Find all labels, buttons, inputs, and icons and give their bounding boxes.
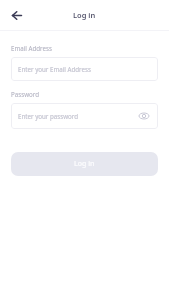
button[interactable]: Enter your password bbox=[11, 103, 158, 129]
staticText: Enter your Email Address bbox=[18, 65, 91, 73]
button[interactable]: Back bbox=[6, 5, 26, 25]
staticText: Log in bbox=[73, 10, 96, 20]
staticText: Email Address bbox=[11, 44, 52, 52]
button[interactable]: Log in bbox=[11, 152, 158, 176]
button[interactable]: Show password bbox=[137, 109, 151, 123]
button[interactable]: Enter your Email Address bbox=[11, 57, 158, 81]
staticText: Password bbox=[11, 90, 39, 98]
staticText: Log in bbox=[74, 159, 95, 169]
staticText: Enter your password bbox=[18, 112, 79, 120]
